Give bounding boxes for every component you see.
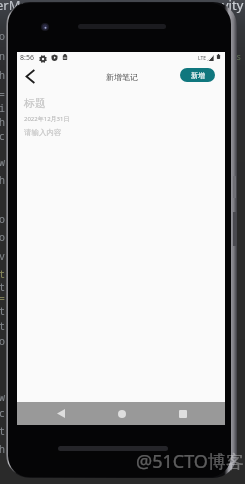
staticText: 新增 <box>191 71 205 80</box>
staticText: t <box>0 424 5 438</box>
staticText: 2022年12月31日 <box>24 115 70 123</box>
staticText: t <box>0 280 5 294</box>
staticText: h <box>0 442 5 456</box>
staticText: o <box>0 230 5 244</box>
staticText: LTE <box>198 55 207 62</box>
staticText: h <box>0 173 5 187</box>
staticText: s <box>236 50 242 62</box>
staticText: c <box>0 406 5 420</box>
button[interactable]: 新增 <box>180 68 215 82</box>
staticText: t <box>0 304 5 318</box>
button[interactable]: Back <box>18 64 42 88</box>
staticText: @51CTO博客 <box>136 449 244 474</box>
staticText: c <box>0 129 5 143</box>
staticText: erMa <box>0 0 28 14</box>
staticText: t <box>0 319 5 333</box>
staticText: h <box>0 115 5 129</box>
staticText: n <box>0 49 5 63</box>
staticText: h <box>0 68 5 82</box>
staticText: 标题 <box>24 96 46 110</box>
staticText: w <box>0 390 5 404</box>
staticText: vity <box>222 0 244 14</box>
staticText: 请输入内容 <box>24 128 62 137</box>
staticText: o <box>0 29 5 43</box>
staticText: t <box>0 267 5 281</box>
staticText: o <box>0 334 5 348</box>
staticText: o <box>0 212 5 226</box>
staticText: w <box>0 155 5 169</box>
staticText: 8:56 <box>20 53 34 63</box>
staticText: = <box>0 291 5 305</box>
staticText: = <box>0 87 5 101</box>
button[interactable]: Recents <box>171 402 194 425</box>
staticText: i <box>0 101 5 115</box>
staticText: v <box>0 249 5 263</box>
button[interactable]: Back <box>49 402 72 425</box>
button[interactable]: Home <box>110 402 133 425</box>
staticText: 新增笔记 <box>106 72 138 82</box>
